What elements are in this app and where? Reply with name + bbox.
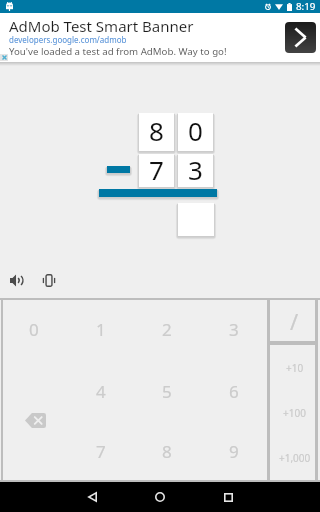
button[interactable]: +1,000 (272, 436, 317, 481)
button[interactable]: 2 (133, 300, 200, 362)
staticText: 6 (229, 380, 239, 403)
button[interactable]: Vibrate (36, 268, 61, 293)
staticText: 3 (188, 152, 203, 185)
staticText: / (290, 306, 299, 336)
button[interactable]: Home (140, 482, 180, 512)
button[interactable]: 5 (133, 364, 200, 423)
button[interactable]: 3 (200, 300, 267, 362)
button[interactable]: 6 (200, 364, 267, 423)
staticText: 5 (162, 380, 172, 403)
staticText: You've loaded a test ad from AdMob. Way … (9, 45, 227, 58)
button[interactable]: / (272, 302, 317, 345)
button[interactable]: Open ad (285, 22, 316, 53)
staticText: AdMob Test Smart Banner (9, 16, 194, 36)
button[interactable]: Recents (208, 482, 248, 512)
button[interactable]: 4 (67, 364, 134, 423)
staticText: 4 (96, 380, 106, 403)
button[interactable]: Close ad (0, 54, 8, 61)
button[interactable]: 3 (178, 154, 213, 187)
button[interactable]: Back (72, 482, 112, 512)
button[interactable]: Backspace (2, 362, 69, 478)
staticText: 2 (162, 318, 172, 341)
button[interactable]: 9 (200, 424, 267, 483)
button[interactable]: +10 (272, 346, 317, 391)
button[interactable]: 0 (178, 113, 213, 151)
button[interactable]: +100 (272, 391, 317, 436)
button[interactable]: AdMob Test Smart Banner (0, 13, 320, 62)
staticText: 3 (229, 318, 239, 341)
staticText: 1 (96, 318, 106, 341)
staticText: 7 (149, 152, 164, 185)
staticText: +1,000 (279, 451, 311, 465)
staticText: 7 (96, 440, 106, 463)
staticText: 8:19 (296, 0, 316, 13)
staticText: 0 (188, 113, 203, 148)
button[interactable]: 7 (67, 424, 134, 483)
staticText: developers.google.com/admob (9, 34, 127, 45)
staticText: +100 (283, 406, 306, 420)
staticText: 8 (162, 440, 172, 463)
staticText: 9 (229, 440, 239, 463)
button[interactable]: Sound (4, 268, 29, 293)
button[interactable]: 0 (0, 300, 67, 362)
staticText: 0 (29, 318, 39, 341)
staticText: +10 (286, 361, 304, 375)
staticText: 8 (149, 113, 164, 148)
button[interactable]: 7 (139, 154, 174, 187)
button[interactable]: 8 (133, 424, 200, 483)
button[interactable]: 8 (139, 113, 174, 151)
